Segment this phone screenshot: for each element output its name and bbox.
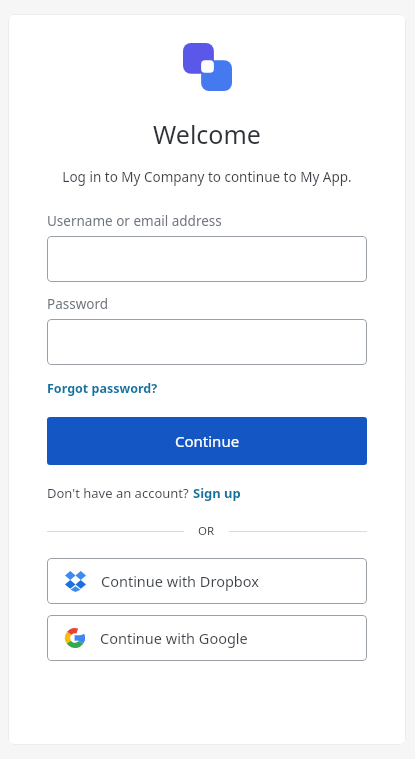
staticText: Continue with Google xyxy=(100,628,248,648)
staticText: Log in to My Company to continue to My A… xyxy=(47,168,367,186)
other: Dropbox xyxy=(65,571,86,592)
staticText: OR xyxy=(198,523,215,539)
button[interactable]: Forgot password? xyxy=(47,380,158,397)
staticText: Password xyxy=(47,295,109,313)
staticText: Welcome xyxy=(47,117,367,151)
staticText: Sign up xyxy=(193,484,241,502)
staticText: Don't have an account? xyxy=(47,484,193,502)
staticText: Continue xyxy=(175,431,240,451)
button[interactable]: Text input xyxy=(47,236,367,282)
button[interactable]: Continue xyxy=(47,417,367,465)
staticText: Username or email address xyxy=(47,212,222,230)
staticText: Continue with Dropbox xyxy=(101,571,259,591)
button[interactable]: Sign up xyxy=(193,484,241,502)
button[interactable]: Text input xyxy=(47,319,367,365)
button[interactable]: Google xyxy=(47,615,367,661)
other: App logo xyxy=(183,43,232,91)
button[interactable]: Dropbox xyxy=(47,558,367,604)
other: Google xyxy=(65,628,85,648)
staticText: Forgot password? xyxy=(47,380,158,397)
